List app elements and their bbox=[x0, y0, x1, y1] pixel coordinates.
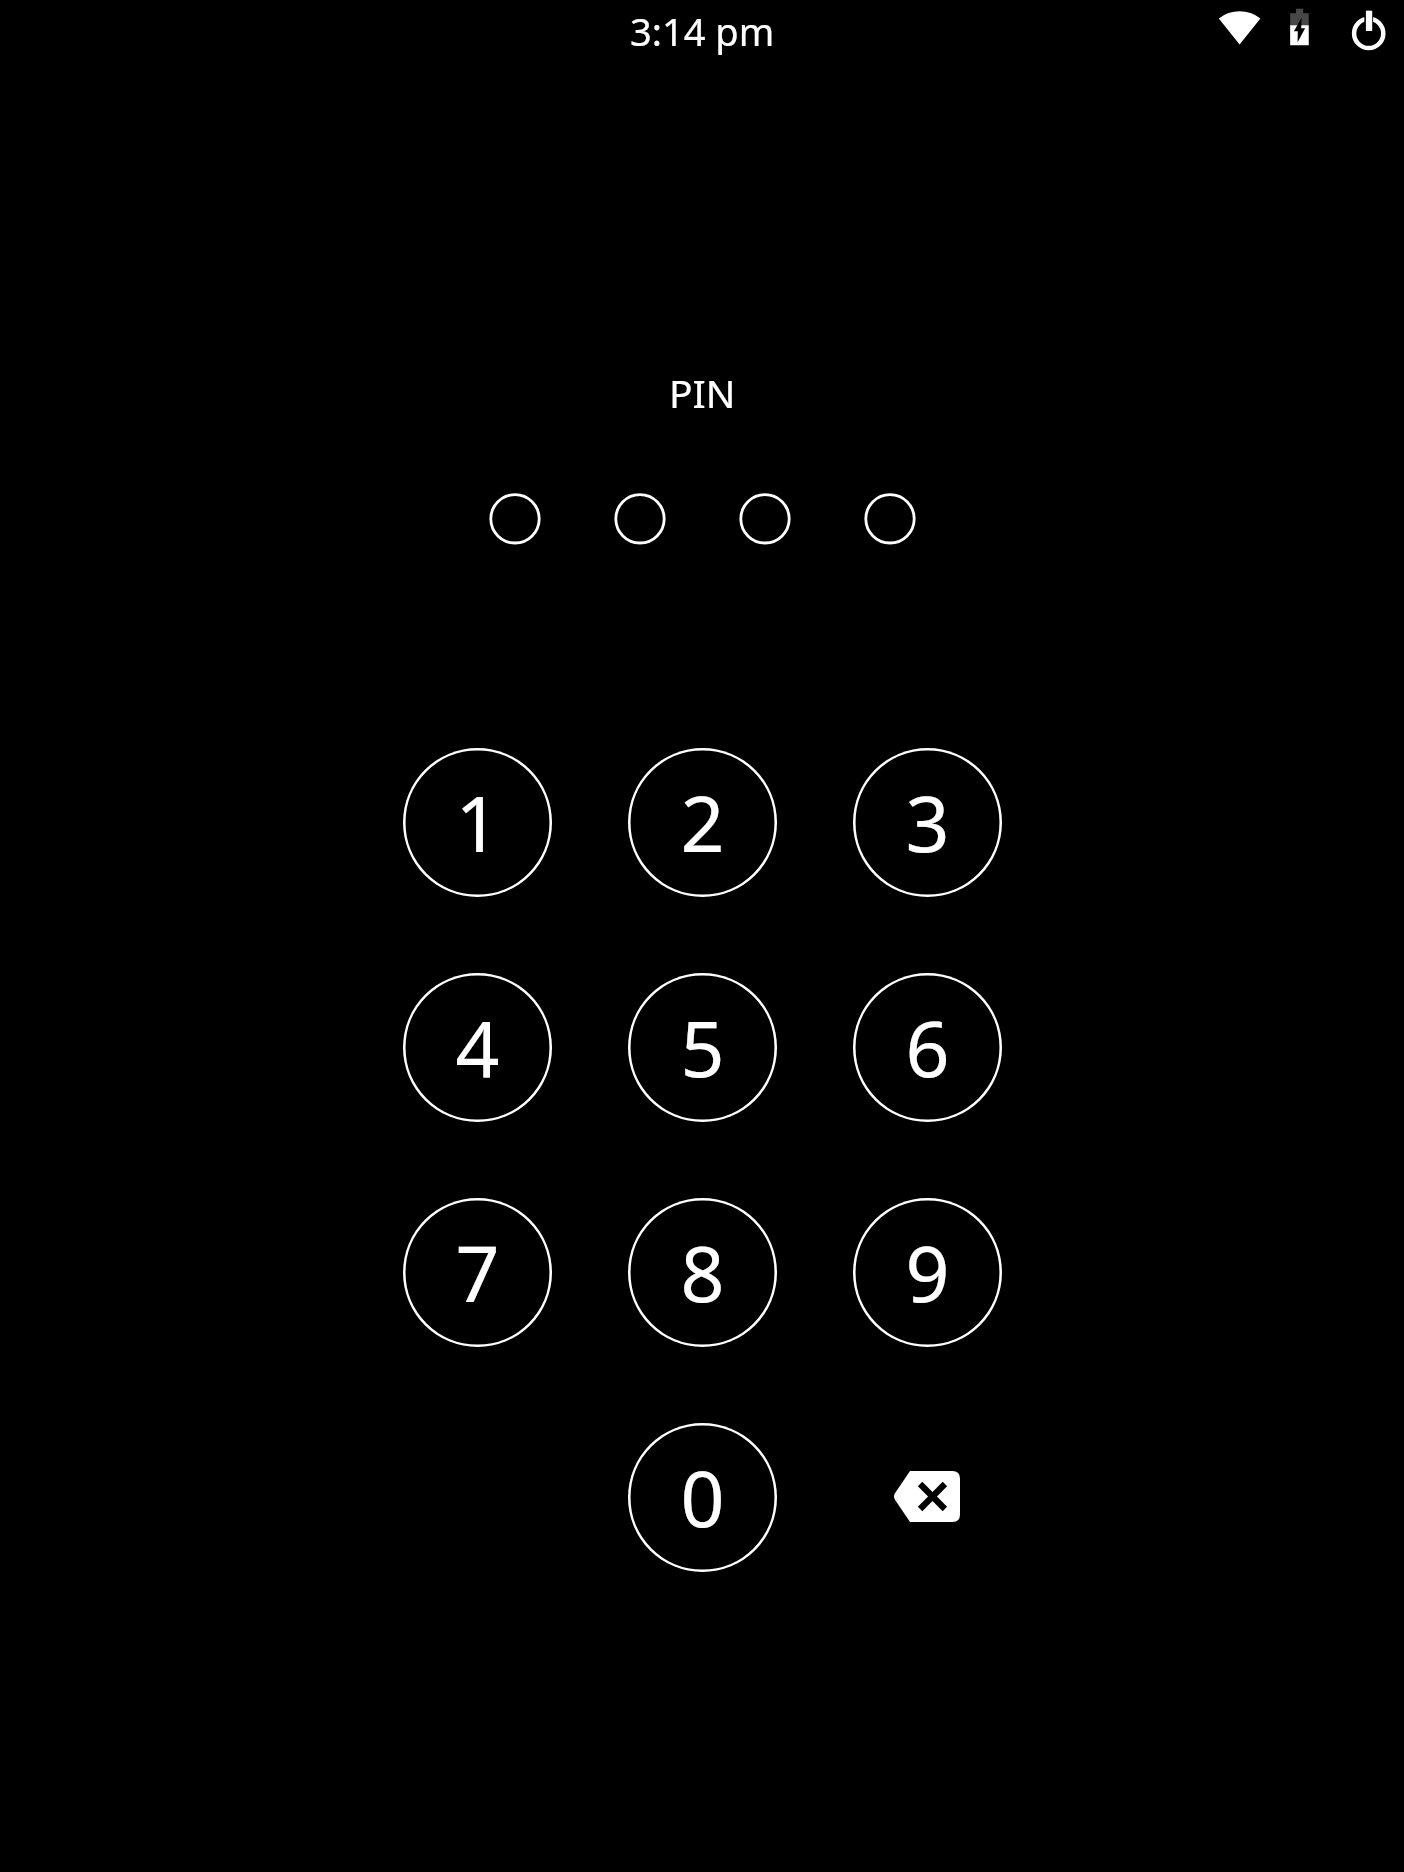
button[interactable]: 5 bbox=[628, 973, 777, 1122]
staticText: 6 bbox=[905, 995, 950, 1100]
button[interactable]: 0 bbox=[628, 1423, 777, 1572]
staticText: 2 bbox=[680, 770, 725, 875]
button[interactable]: 1 bbox=[403, 748, 552, 897]
button[interactable]: 4 bbox=[403, 973, 552, 1122]
button[interactable]: Delete bbox=[853, 1423, 1002, 1572]
button[interactable]: 9 bbox=[853, 1198, 1002, 1347]
button[interactable]: Power bbox=[1345, 10, 1392, 57]
staticText: 5 bbox=[680, 995, 725, 1100]
button[interactable]: 7 bbox=[403, 1198, 552, 1347]
button[interactable]: 6 bbox=[853, 973, 1002, 1122]
staticText: 3:14 pm bbox=[630, 5, 775, 57]
staticText: 8 bbox=[680, 1220, 725, 1325]
staticText: 4 bbox=[455, 995, 500, 1100]
staticText: 3 bbox=[905, 770, 950, 875]
staticText: 0 bbox=[680, 1445, 725, 1550]
staticText: 7 bbox=[455, 1220, 500, 1325]
staticText: 9 bbox=[905, 1220, 950, 1325]
staticText: 1 bbox=[455, 770, 500, 875]
button[interactable]: 3 bbox=[853, 748, 1002, 897]
button[interactable]: 8 bbox=[628, 1198, 777, 1347]
staticText: PIN bbox=[669, 366, 736, 419]
button[interactable]: 2 bbox=[628, 748, 777, 897]
